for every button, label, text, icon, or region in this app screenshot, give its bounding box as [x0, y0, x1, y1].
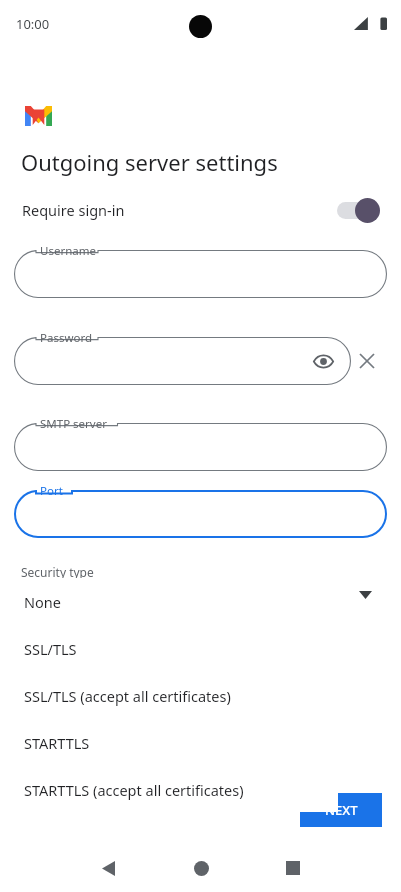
staticText: NEXT: [325, 801, 358, 819]
button[interactable]: Username: [14, 250, 387, 298]
staticText: SSL/TLS (accept all certificates): [24, 686, 231, 706]
button[interactable]: Password: [14, 337, 351, 385]
button[interactable]: Show password: [308, 346, 338, 376]
staticText: 10:00: [16, 15, 50, 33]
button[interactable]: Recent apps: [273, 848, 313, 888]
staticText: SSL/TLS: [24, 639, 77, 659]
button[interactable]: NEXT: [300, 793, 382, 827]
button[interactable]: Port: [14, 490, 387, 538]
staticText: STARTTLS (accept all certificates): [24, 780, 244, 800]
button[interactable]: SSL/TLS (accept all certificates): [14, 672, 338, 719]
staticText: Port: [40, 483, 63, 499]
button[interactable]: Open security type menu: [348, 578, 382, 612]
staticText: Username: [40, 243, 96, 259]
button[interactable]: Back: [88, 848, 128, 888]
staticText: Outgoing server settings: [21, 147, 278, 177]
button[interactable]: [335, 197, 381, 223]
button[interactable]: Clear: [353, 347, 381, 375]
button[interactable]: STARTTLS (accept all certificates): [14, 766, 338, 813]
button[interactable]: Home: [181, 848, 221, 888]
staticText: Require sign-in: [22, 200, 125, 220]
staticText: Password: [40, 330, 93, 346]
button[interactable]: Require sign-in: [14, 192, 387, 228]
staticText: STARTTLS: [24, 733, 90, 753]
button[interactable]: STARTTLS: [14, 719, 338, 766]
button[interactable]: SSL/TLS: [14, 625, 338, 672]
button[interactable]: None: [14, 578, 338, 625]
staticText: None: [24, 592, 61, 612]
staticText: Security type: [21, 564, 94, 580]
button[interactable]: SMTP server: [14, 423, 387, 471]
staticText: SMTP server: [40, 416, 107, 432]
